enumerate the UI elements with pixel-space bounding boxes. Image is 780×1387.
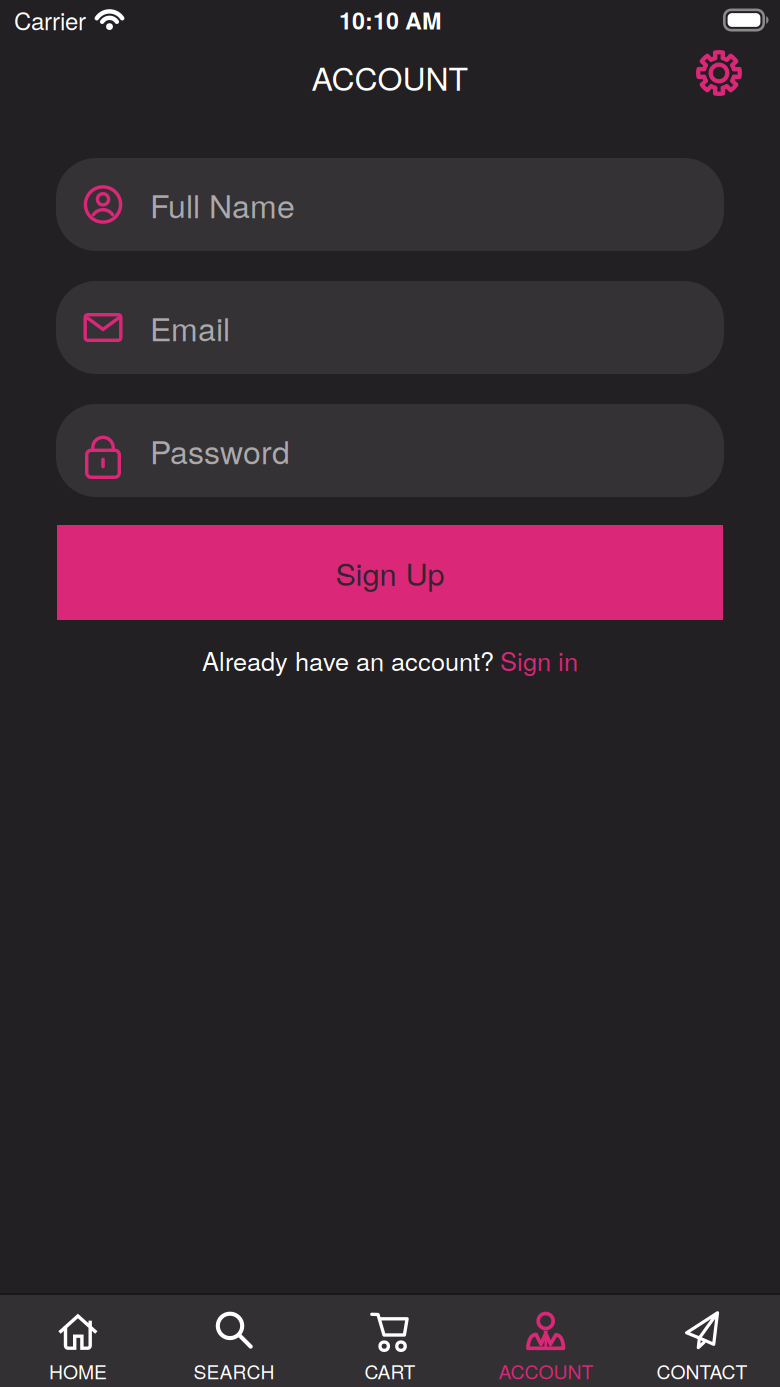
button[interactable]: ACCOUNT — [468, 1295, 624, 1385]
staticText: Sign Up — [335, 550, 444, 594]
staticText: SEARCH — [193, 1357, 274, 1385]
staticText: ACCOUNT — [498, 1357, 593, 1385]
staticText: CART — [364, 1357, 415, 1385]
button[interactable]: Settings — [697, 51, 741, 95]
button[interactable]: SEARCH — [156, 1295, 312, 1385]
staticText: Password — [150, 428, 290, 473]
staticText: CONTACT — [656, 1357, 747, 1385]
button[interactable]: Sign Up — [57, 525, 723, 620]
button[interactable]: CART — [312, 1295, 468, 1385]
staticText: Carrier — [14, 3, 86, 37]
button[interactable]: Sign in — [500, 642, 578, 678]
button[interactable]: HOME — [0, 1295, 156, 1385]
staticText: Already have an account? — [202, 642, 494, 678]
staticText: Email — [150, 305, 230, 350]
button[interactable]: CONTACT — [624, 1295, 780, 1385]
staticText: Sign in — [500, 642, 578, 678]
staticText: ACCOUNT — [311, 54, 468, 100]
staticText: Full Name — [150, 182, 295, 227]
staticText: 10:10 AM — [339, 3, 441, 37]
staticText: HOME — [49, 1357, 107, 1385]
